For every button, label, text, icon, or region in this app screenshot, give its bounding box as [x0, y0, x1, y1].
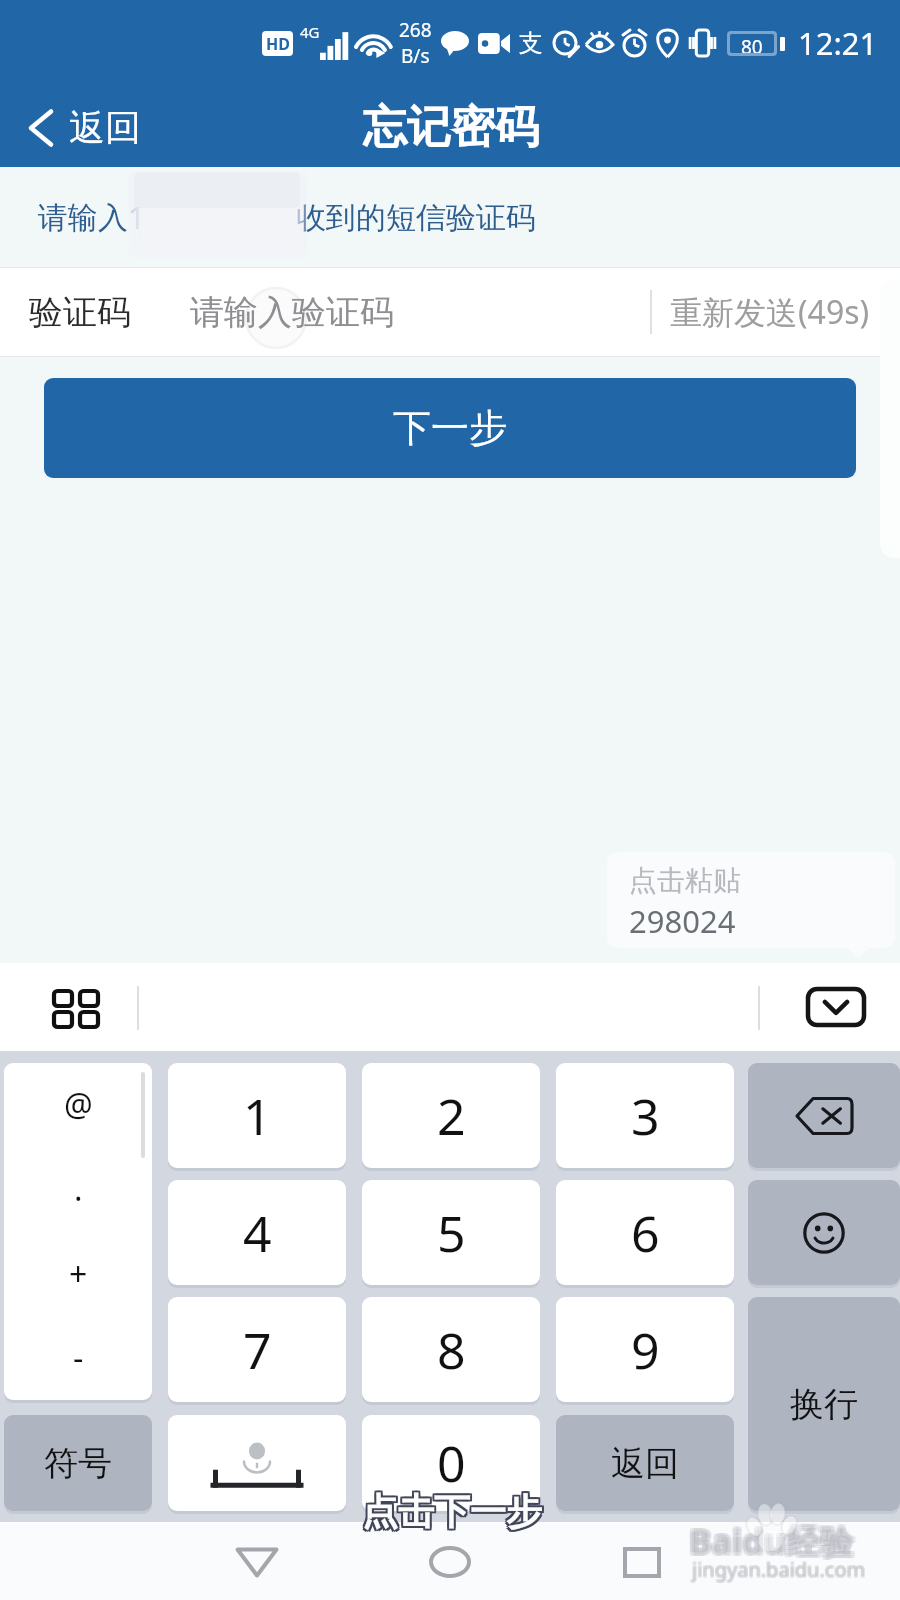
button[interactable]: 9 [556, 1297, 734, 1402]
staticText: 1 [128, 197, 146, 238]
button[interactable]: Back [197, 1522, 317, 1600]
staticText: Baidu经验 [687, 1516, 852, 1562]
staticText: Baidu经验 [691, 1520, 856, 1566]
staticText: 收到的短信验证码 [296, 199, 536, 237]
button[interactable]: 符号 [4, 1415, 152, 1511]
staticText: 请输入 [38, 199, 128, 237]
staticText: 忘记密码 [363, 100, 539, 155]
button[interactable]: 重新发送(49s) [640, 268, 900, 356]
button[interactable]: 返回 [556, 1415, 734, 1511]
staticText: Baidu经验 [689, 1518, 854, 1564]
button[interactable]: Keyboard layouts [54, 991, 98, 1027]
staticText: . [74, 1167, 83, 1211]
staticText: 7 [243, 1316, 272, 1384]
staticText: 点击下一步 [360, 1489, 540, 1534]
staticText: 请输入验证码 [190, 291, 394, 334]
staticText: 298024 [629, 900, 736, 942]
button[interactable]: 6 [556, 1180, 734, 1285]
button[interactable]: 点击粘贴 [607, 852, 895, 948]
staticText: jingyan.baidu.com [691, 1557, 865, 1584]
staticText: 0 [437, 1429, 466, 1497]
staticText: 点击下一步 [364, 1487, 544, 1532]
button[interactable]: Recents [582, 1522, 702, 1600]
staticText: 点击下一步 [362, 1491, 542, 1536]
staticText: jingyan.baidu.com [693, 1556, 867, 1583]
button[interactable]: 0 [362, 1415, 540, 1511]
staticText: 点击下一步 [360, 1487, 540, 1532]
button[interactable]: Backspace [748, 1063, 900, 1168]
staticText: 5 [437, 1199, 466, 1267]
staticText: - [73, 1336, 84, 1380]
staticText: jingyan.baidu.com [692, 1555, 866, 1582]
button[interactable]: 3 [556, 1063, 734, 1168]
staticText: 点击下一步 [364, 1489, 544, 1534]
staticText: Baidu经验 [689, 1516, 854, 1562]
staticText: 4 [243, 1199, 272, 1267]
staticText: 点击下一步 [362, 1487, 542, 1532]
button[interactable]: 7 [168, 1297, 346, 1402]
button[interactable]: 1 [168, 1063, 346, 1168]
button[interactable]: 8 [362, 1297, 540, 1402]
staticText: 6 [631, 1199, 660, 1267]
staticText: 8 [437, 1316, 466, 1384]
button[interactable]: 5 [362, 1180, 540, 1285]
staticText: Baidu经验 [689, 1520, 854, 1566]
staticText: jingyan.baidu.com [693, 1557, 867, 1584]
button[interactable]: 2 [362, 1063, 540, 1168]
staticText: 9 [631, 1316, 660, 1384]
button[interactable]: 返回 [0, 97, 159, 158]
staticText: 点击粘贴 [629, 863, 741, 898]
button[interactable]: 下一步 [44, 378, 856, 478]
staticText: 返回 [611, 1442, 679, 1485]
staticText: 重新发送(49s) [670, 290, 870, 334]
staticText: 80 [741, 34, 763, 53]
staticText: 验证码 [29, 291, 131, 334]
staticText: jingyan.baidu.com [692, 1556, 866, 1583]
staticText: 点击下一步 [364, 1491, 544, 1536]
staticText: 换行 [790, 1383, 858, 1426]
staticText: 268 [399, 17, 432, 43]
staticText: jingyan.baidu.com [692, 1557, 866, 1584]
staticText: B/s [401, 43, 430, 69]
staticText: 4G [300, 22, 320, 42]
staticText: 点击下一步 [360, 1491, 540, 1536]
staticText: jingyan.baidu.com [691, 1555, 865, 1582]
button[interactable]: 请输入验证码 [190, 268, 630, 356]
staticText: 符号 [44, 1442, 112, 1485]
staticText: 3 [631, 1082, 660, 1150]
button[interactable]: Hide keyboard [808, 989, 864, 1025]
staticText: @ [64, 1083, 93, 1127]
staticText: Baidu经验 [691, 1516, 856, 1562]
button[interactable]: Home [390, 1522, 510, 1600]
staticText: Baidu经验 [691, 1518, 856, 1564]
button[interactable]: 换行 [748, 1297, 900, 1511]
staticText: jingyan.baidu.com [693, 1555, 867, 1582]
staticText: 点击下一步 [362, 1489, 542, 1534]
button[interactable]: Emoji [748, 1180, 900, 1285]
staticText: 下一步 [393, 404, 507, 452]
staticText: 1 [243, 1082, 272, 1150]
staticText: HD [266, 33, 290, 55]
button[interactable]: Voice input [168, 1415, 346, 1511]
staticText: 支 [519, 28, 543, 58]
staticText: Baidu经验 [687, 1520, 852, 1566]
staticText: jingyan.baidu.com [691, 1556, 865, 1583]
staticText: 返回 [69, 105, 141, 150]
button[interactable]: 4 [168, 1180, 346, 1285]
button[interactable]: @ [4, 1063, 152, 1400]
staticText: + [69, 1252, 88, 1296]
staticText: Baidu经验 [687, 1518, 852, 1564]
staticText: 2 [437, 1082, 466, 1150]
staticText: 12:21 [798, 22, 878, 64]
